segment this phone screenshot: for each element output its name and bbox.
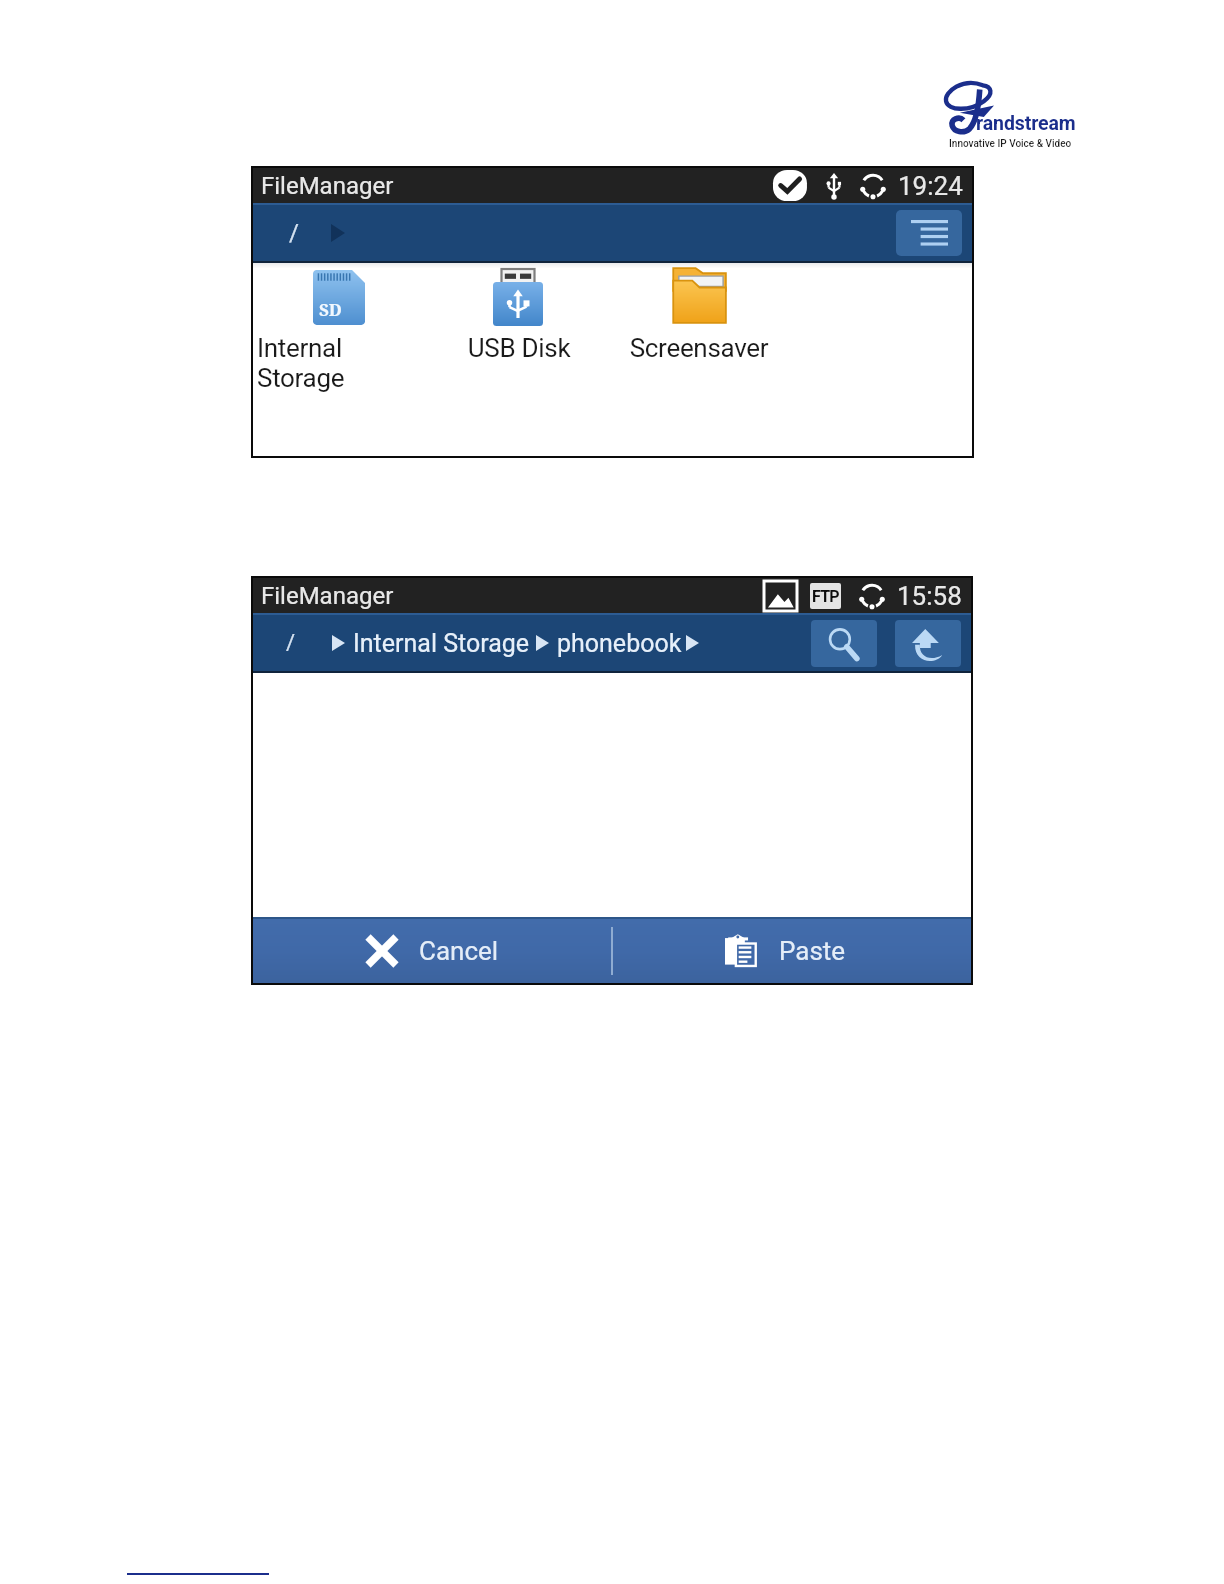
staticText: / [286,630,296,656]
staticText: 15:58 [897,581,962,611]
button[interactable]: Up one level [895,620,961,667]
staticText: FileManager [261,172,394,200]
staticText: randstream [976,112,1076,135]
staticText: Innovative IP Voice & Video [949,138,1072,150]
staticText: SD [319,298,342,321]
staticText: FTP [812,587,839,606]
staticText: Internal Storage [257,333,345,393]
staticText: Internal Storage [353,629,530,658]
button[interactable]: Cancel [253,919,611,983]
staticText: Paste [779,936,846,966]
button[interactable]: Paste [613,919,971,983]
staticText: FileManager [261,582,394,610]
staticText: phonebook [557,629,682,658]
button[interactable]: Search [811,620,877,667]
staticText: / [289,219,299,247]
staticText: 19:24 [898,171,963,201]
staticText: Cancel [419,936,499,966]
staticText: USB Disk [429,333,609,363]
button[interactable]: Menu [896,210,962,256]
staticText: Screensaver [609,333,789,363]
